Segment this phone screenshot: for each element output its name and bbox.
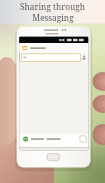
staticText: Messaging [32, 12, 74, 23]
staticText: Sharing through [20, 1, 85, 12]
